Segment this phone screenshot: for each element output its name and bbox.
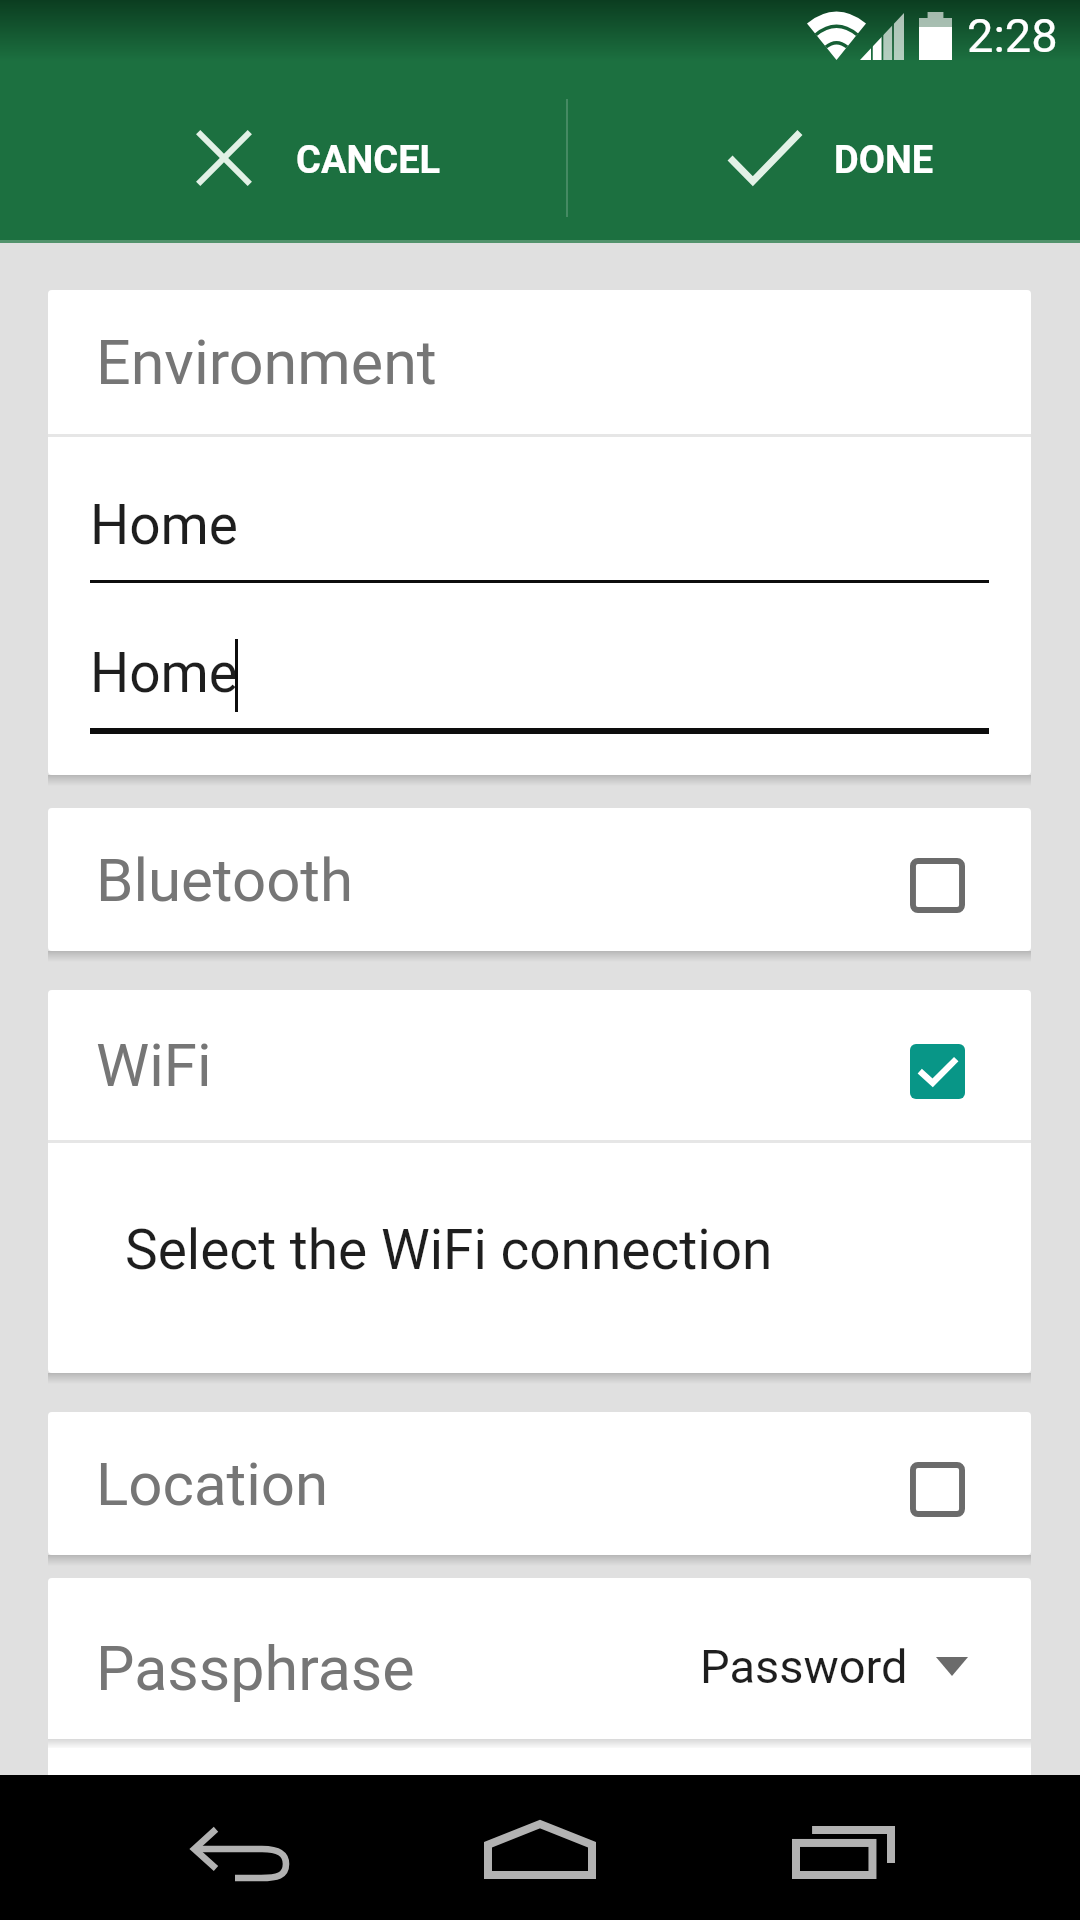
staticText: Password bbox=[700, 1639, 908, 1694]
button[interactable]: Location bbox=[48, 1412, 1031, 1555]
staticText: Environment bbox=[96, 327, 437, 398]
staticText: Location bbox=[96, 1449, 329, 1519]
button[interactable]: Passphrase bbox=[48, 1578, 1031, 1739]
staticText: Bluetooth bbox=[96, 845, 354, 915]
staticText: WiFi bbox=[96, 1030, 212, 1100]
staticText: Home bbox=[90, 641, 239, 705]
button[interactable]: WiFi bbox=[48, 990, 1031, 1140]
staticText: Passphrase bbox=[96, 1633, 415, 1704]
staticText: Home bbox=[90, 493, 239, 557]
staticText: 2:28 bbox=[967, 8, 1058, 63]
button[interactable]: DONE bbox=[568, 72, 1080, 243]
button[interactable]: Back bbox=[130, 1775, 350, 1920]
staticText: CANCEL bbox=[296, 138, 441, 183]
button[interactable]: CANCEL bbox=[0, 72, 566, 243]
staticText: Select the WiFi connection bbox=[125, 1218, 773, 1282]
button[interactable]: Bluetooth bbox=[48, 808, 1031, 951]
button[interactable]: Home bbox=[430, 1775, 650, 1920]
button[interactable]: Recents bbox=[733, 1775, 953, 1920]
staticText: DONE bbox=[834, 138, 934, 183]
button[interactable]: Select the WiFi connection bbox=[48, 1143, 1031, 1373]
